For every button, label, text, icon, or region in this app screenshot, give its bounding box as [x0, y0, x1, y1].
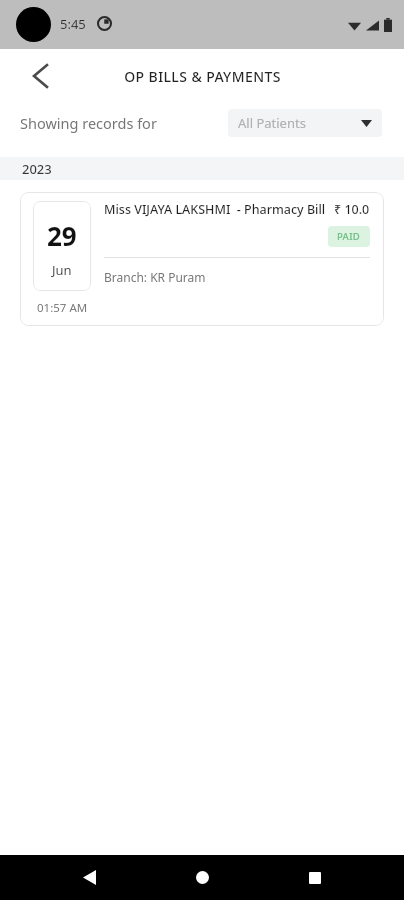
staticText: ₹ 10.0 [334, 201, 370, 218]
button[interactable]: All Patients [228, 109, 382, 137]
staticText: 5:45 [60, 15, 86, 33]
staticText: PAID [337, 230, 361, 243]
button[interactable]: Back [18, 54, 62, 98]
staticText: Showing records for [20, 113, 157, 133]
staticText: OP BILLS & PAYMENTS [124, 67, 281, 86]
button[interactable]: Recent apps [291, 855, 339, 900]
staticText: 29 [47, 218, 77, 253]
staticText: Jun [52, 261, 72, 279]
button[interactable]: Back [65, 855, 113, 900]
button[interactable]: Home [178, 855, 226, 900]
staticText: All Patients [238, 114, 306, 132]
staticText: Branch: KR Puram [104, 269, 206, 285]
button[interactable]: 29 [20, 192, 384, 326]
staticText: 01:57 AM [37, 300, 88, 316]
staticText: 2023 [22, 160, 52, 178]
staticText: Miss VIJAYA LAKSHMI - Pharmacy Bill [104, 201, 328, 218]
